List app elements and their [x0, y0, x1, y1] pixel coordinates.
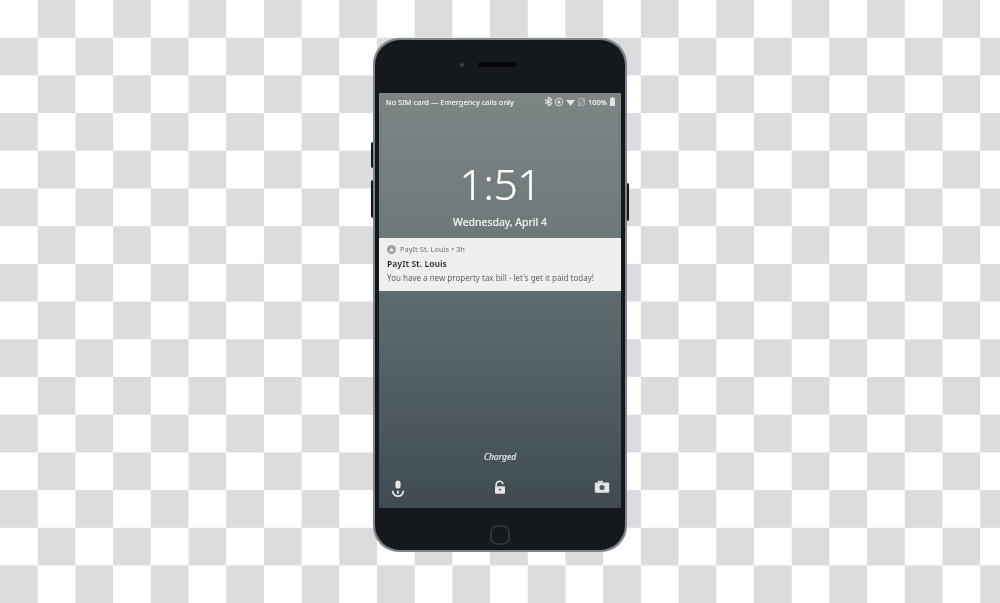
- staticText: 1:51: [459, 155, 542, 212]
- staticText: Wednesday, April 4: [453, 215, 547, 229]
- staticText: PayIt St. Louis: [387, 258, 447, 270]
- staticText: You have a new property tax bill - let's…: [387, 272, 594, 283]
- staticText: Charged: [379, 451, 621, 463]
- staticText: 100%: [588, 97, 608, 107]
- button[interactable]: Camera: [592, 477, 612, 497]
- button[interactable]: PayIt St. Louis • 3h: [379, 238, 621, 291]
- staticText: PayIt St. Louis • 3h: [400, 244, 465, 254]
- button[interactable]: Unlock: [490, 477, 510, 497]
- button[interactable]: Voice assistant: [388, 477, 408, 497]
- staticText: No SIM card — Emergency calls only: [386, 97, 514, 107]
